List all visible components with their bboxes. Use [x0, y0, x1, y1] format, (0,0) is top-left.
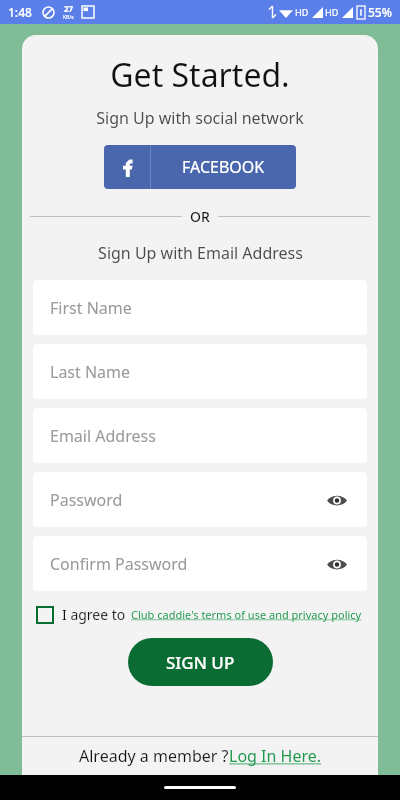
staticText: Confirm Password	[50, 553, 188, 575]
staticText: I agree to	[62, 605, 126, 624]
staticText: Last Name	[50, 361, 131, 383]
staticText: OR	[190, 207, 210, 226]
staticText: HD	[295, 6, 309, 18]
staticText: HD	[325, 6, 339, 18]
button[interactable]: Show password	[324, 551, 350, 577]
button[interactable]: Show password	[324, 487, 350, 513]
button[interactable]: First Name	[33, 280, 367, 335]
staticText: First Name	[50, 297, 132, 319]
button[interactable]: FACEBOOK	[104, 145, 296, 189]
button[interactable]: Password	[33, 472, 367, 527]
staticText: Log In Here.	[229, 745, 322, 767]
staticText: Already a member ?	[79, 745, 229, 767]
staticText: KB/s	[63, 14, 74, 21]
staticText: Club caddie's terms of use and privacy p…	[131, 607, 362, 622]
button[interactable]: Last Name	[33, 344, 367, 399]
staticText: Sign Up with social network	[96, 107, 304, 129]
staticText: FACEBOOK	[182, 156, 265, 178]
staticText: Get Started.	[110, 53, 290, 97]
staticText: 27	[64, 3, 74, 14]
staticText: Email Address	[50, 425, 156, 447]
button[interactable]: Club caddie's terms of use and privacy p…	[131, 607, 362, 622]
button[interactable]: Agree to terms checkbox	[36, 606, 54, 624]
button[interactable]: SIGN UP	[128, 638, 273, 686]
staticText: 1:48	[8, 4, 32, 20]
button[interactable]: Email Address	[33, 408, 367, 463]
button[interactable]: Confirm Password	[33, 536, 367, 591]
staticText: 55%	[368, 4, 392, 20]
button[interactable]: Log In Here.	[229, 745, 322, 767]
staticText: SIGN UP	[166, 651, 235, 674]
staticText: Password	[50, 489, 123, 511]
staticText: Sign Up with Email Address	[98, 242, 303, 264]
